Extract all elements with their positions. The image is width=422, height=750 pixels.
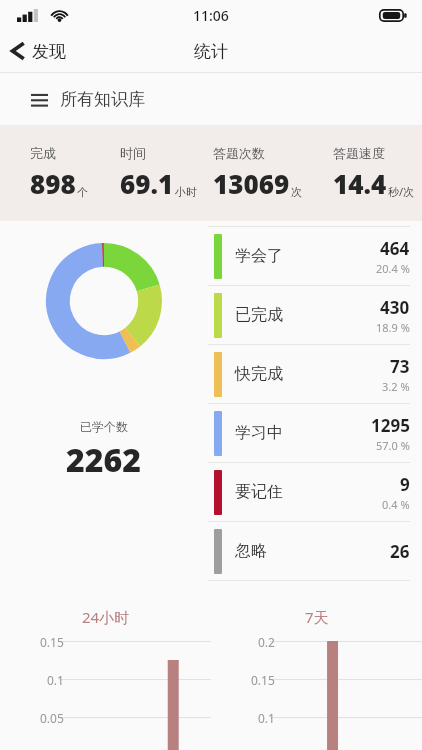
button[interactable]: 要记住: [208, 462, 410, 521]
other: Choose library: [31, 93, 48, 106]
staticText: 0.1: [258, 710, 275, 726]
staticText: 69.1: [120, 166, 174, 201]
staticText: 0.15: [40, 634, 64, 650]
staticText: 0.1: [47, 672, 64, 688]
button[interactable]: 忽略: [208, 521, 410, 580]
staticText: 0.05: [40, 710, 64, 726]
staticText: 2262: [66, 438, 142, 482]
staticText: 9: [400, 473, 410, 496]
staticText: 答题速度: [333, 145, 385, 161]
staticText: 1295: [371, 414, 410, 437]
staticText: 898: [30, 166, 76, 201]
staticText: 3.2 %: [382, 379, 410, 394]
staticText: 430: [380, 296, 410, 319]
staticText: 20.4 %: [376, 261, 410, 276]
staticText: 11:06: [193, 6, 229, 25]
button[interactable]: 发现: [0, 30, 80, 72]
button[interactable]: 学习中: [208, 403, 410, 462]
staticText: 学会了: [235, 246, 283, 266]
staticText: 26: [390, 540, 410, 563]
staticText: 已完成: [235, 305, 283, 325]
staticText: 完成: [30, 145, 56, 161]
staticText: 18.9 %: [376, 320, 410, 335]
staticText: 要记住: [235, 482, 283, 502]
staticText: 发现: [32, 41, 66, 62]
staticText: 时间: [120, 145, 146, 161]
staticText: 73: [390, 355, 410, 378]
staticText: 快完成: [235, 364, 283, 384]
staticText: 忽略: [235, 541, 267, 561]
staticText: 0.2: [258, 634, 275, 650]
staticText: 答题次数: [213, 145, 265, 161]
staticText: 统计: [194, 41, 228, 62]
staticText: 0.4 %: [382, 497, 410, 512]
staticText: 所有知识库: [60, 89, 145, 110]
button[interactable]: 快完成: [208, 344, 410, 403]
staticText: 14.4: [333, 166, 387, 201]
staticText: 学习中: [235, 423, 283, 443]
staticText: 13069: [213, 166, 290, 201]
staticText: 464: [380, 237, 410, 260]
staticText: 24小时: [82, 607, 130, 627]
staticText: 7天: [305, 607, 329, 627]
staticText: 个: [77, 185, 88, 199]
button[interactable]: 学会了: [208, 226, 410, 285]
staticText: 小时: [175, 185, 197, 199]
staticText: 秒/次: [388, 184, 415, 199]
staticText: 已学个数: [80, 419, 128, 434]
staticText: 0.15: [251, 672, 275, 688]
button[interactable]: 已完成: [208, 285, 410, 344]
staticText: 次: [291, 185, 302, 199]
staticText: 57.0 %: [376, 438, 410, 453]
button[interactable]: Choose library: [0, 73, 422, 125]
